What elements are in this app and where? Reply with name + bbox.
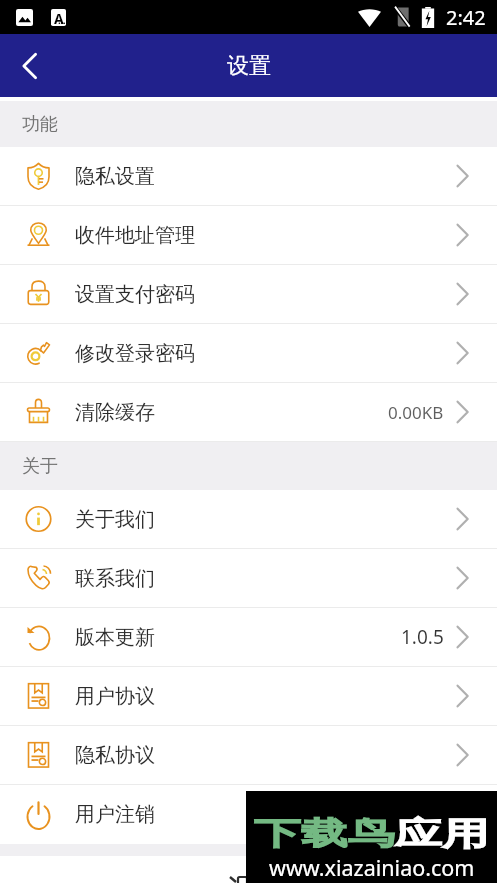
- button[interactable]: 联系我们: [0, 549, 497, 608]
- staticText: 清除缓存: [75, 400, 155, 425]
- staticText: 下载鸟: [254, 814, 395, 853]
- staticText: 用户协议: [75, 684, 155, 709]
- button[interactable]: 关于我们: [0, 490, 497, 549]
- button[interactable]: 版本更新: [0, 608, 497, 667]
- staticText: 隐私设置: [75, 164, 155, 189]
- staticText: 隐私协议: [75, 743, 155, 768]
- staticText: 关于: [22, 455, 58, 478]
- staticText: A: [54, 9, 64, 26]
- button[interactable]: 隐私设置: [0, 147, 497, 206]
- button[interactable]: 设置支付密码: [0, 265, 497, 324]
- staticText: 修改登录密码: [75, 341, 195, 366]
- staticText: 0.00KB: [388, 401, 444, 424]
- button[interactable]: 用户注销: [0, 785, 497, 844]
- button[interactable]: Back: [0, 34, 60, 97]
- staticText: www.xiazainiao.com: [269, 853, 475, 882]
- staticText: 设置支付密码: [75, 282, 195, 307]
- staticText: 关于我们: [75, 507, 155, 532]
- button[interactable]: 修改登录密码: [0, 324, 497, 383]
- staticText: 用户注销: [75, 802, 155, 827]
- staticText: 设置: [227, 52, 271, 80]
- button[interactable]: 收件地址管理: [0, 206, 497, 265]
- button[interactable]: 用户协议: [0, 667, 497, 726]
- staticText: 应用: [395, 814, 489, 853]
- button[interactable]: 清除缓存: [0, 383, 497, 442]
- staticText: 收件地址管理: [75, 223, 195, 248]
- button[interactable]: 隐私协议: [0, 726, 497, 785]
- staticText: 功能: [22, 113, 58, 136]
- staticText: 联系我们: [75, 566, 155, 591]
- staticText: 2:42: [446, 4, 486, 31]
- staticText: 1.0.5: [401, 624, 444, 650]
- staticText: 版本更新: [75, 625, 155, 650]
